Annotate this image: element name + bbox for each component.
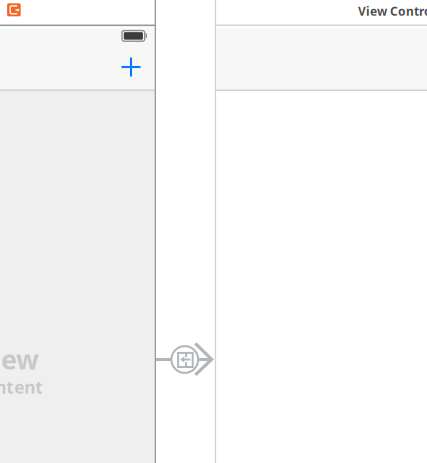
staticText: Prototype Content: [0, 375, 43, 398]
staticText: View Controller Scene: [358, 3, 427, 19]
button[interactable]: Show detail segue: [152, 336, 216, 384]
button[interactable]: Exit placeholder: [7, 3, 21, 16]
button[interactable]: Add: [121, 57, 141, 77]
staticText: Table View: [0, 341, 39, 377]
